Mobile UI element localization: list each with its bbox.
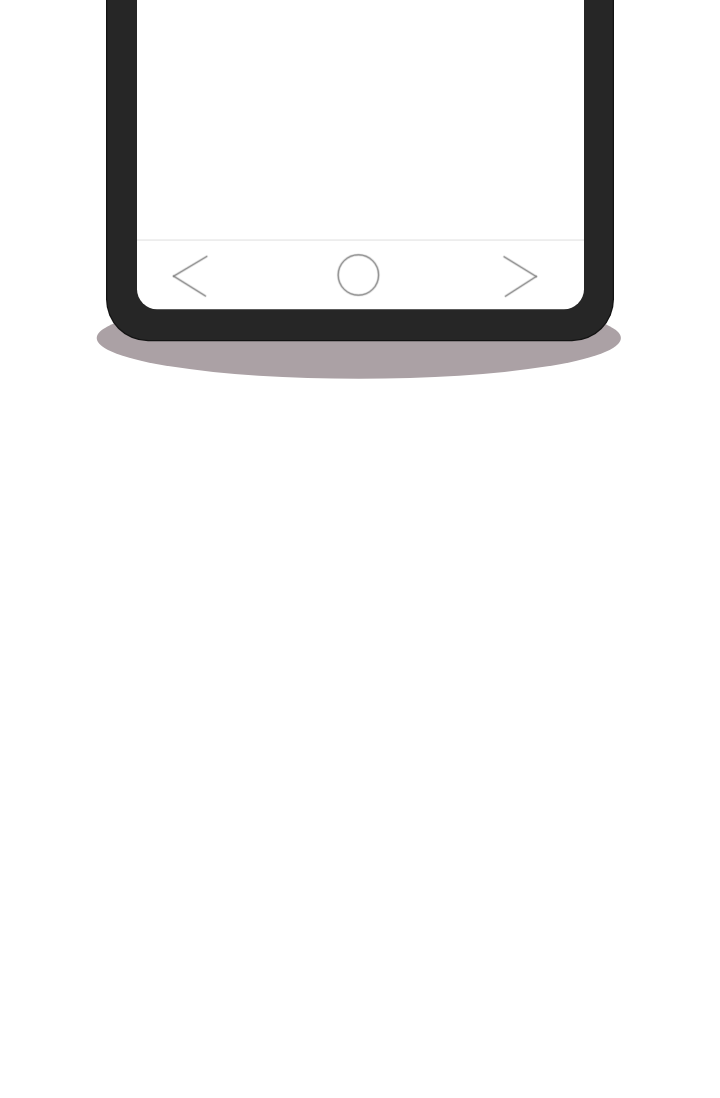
button[interactable]: Forward xyxy=(472,241,570,310)
button[interactable]: Home xyxy=(310,241,407,310)
button[interactable]: Back xyxy=(141,241,239,310)
